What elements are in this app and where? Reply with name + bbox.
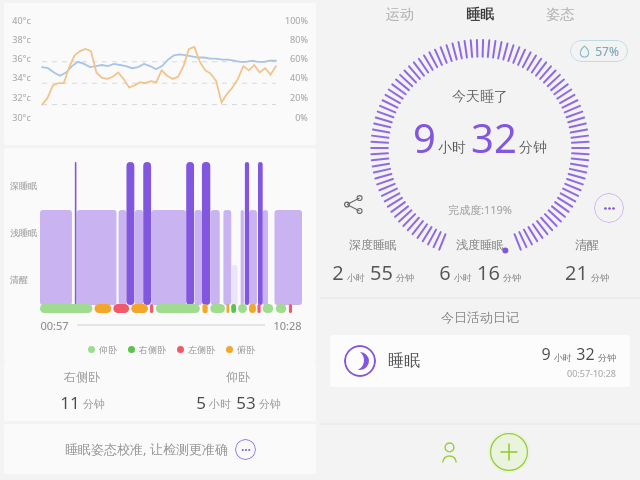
staticText: 小时: [454, 272, 472, 283]
button[interactable]: 姿态: [540, 2, 580, 28]
staticText: 小时: [209, 397, 231, 411]
staticText: 分钟: [83, 397, 105, 411]
button[interactable]: 运动: [380, 2, 420, 28]
staticText: 睡眠: [388, 351, 420, 371]
staticText: 左侧卧: [188, 344, 215, 355]
staticText: 30°c: [12, 111, 31, 123]
staticText: 分钟: [396, 272, 414, 283]
staticText: 2: [332, 259, 344, 286]
staticText: 清醒: [10, 274, 28, 285]
staticText: 分钟: [598, 352, 616, 363]
button[interactable]: 57%: [570, 40, 628, 62]
staticText: 21: [565, 259, 588, 286]
staticText: 浅度睡眠: [456, 237, 504, 252]
staticText: 完成度:119%: [448, 202, 512, 217]
staticText: 分钟: [519, 139, 547, 157]
staticText: 小时: [438, 139, 466, 157]
staticText: 分钟: [259, 397, 281, 411]
staticText: 32: [576, 343, 595, 365]
staticText: 11: [60, 391, 80, 414]
staticText: 00:57-10:28: [567, 367, 616, 379]
staticText: 40%: [290, 71, 308, 83]
staticText: 姿态: [546, 6, 574, 24]
other: More options: [235, 439, 256, 460]
button[interactable]: Add: [486, 429, 532, 475]
staticText: 右侧卧: [64, 369, 100, 384]
staticText: 32: [471, 110, 517, 164]
staticText: 俯卧: [237, 344, 255, 355]
staticText: 仰卧: [99, 344, 117, 355]
staticText: 34°c: [12, 71, 31, 83]
button[interactable]: Profile: [428, 431, 470, 473]
staticText: 38°c: [12, 33, 31, 45]
staticText: 深度睡眠: [349, 237, 397, 252]
staticText: 57%: [595, 43, 619, 59]
button[interactable]: 睡眠: [460, 2, 500, 28]
staticText: 80%: [290, 33, 308, 45]
staticText: 40°c: [12, 14, 31, 26]
staticText: 6: [439, 259, 451, 286]
button[interactable]: 睡眠: [330, 335, 630, 387]
staticText: 55: [370, 259, 393, 286]
staticText: 分钟: [591, 272, 609, 283]
staticText: 0%: [295, 111, 308, 123]
staticText: 深睡眠: [10, 180, 37, 191]
staticText: 53: [236, 391, 256, 414]
button[interactable]: 睡眠姿态校准, 让检测更准确: [4, 424, 316, 474]
staticText: 睡眠: [466, 6, 494, 24]
staticText: 清醒: [575, 237, 599, 252]
staticText: 右侧卧: [139, 344, 166, 355]
button[interactable]: More: [594, 193, 624, 223]
staticText: 9: [541, 343, 551, 365]
staticText: 仰卧: [226, 369, 250, 384]
staticText: 16: [477, 259, 500, 286]
staticText: 00:57: [40, 318, 69, 333]
staticText: 今天睡了: [452, 88, 508, 106]
staticText: 运动: [386, 6, 414, 24]
staticText: 分钟: [503, 272, 521, 283]
staticText: 20%: [290, 91, 308, 103]
staticText: 32°c: [12, 91, 31, 103]
staticText: 今日活动日记: [441, 309, 519, 325]
staticText: 10:28: [273, 318, 302, 333]
staticText: 100%: [285, 14, 308, 26]
staticText: 9: [413, 110, 436, 164]
staticText: 小时: [554, 352, 572, 363]
button[interactable]: Share: [338, 189, 368, 219]
staticText: 60%: [290, 52, 308, 64]
staticText: 浅睡眠: [10, 227, 37, 238]
staticText: 5: [196, 391, 206, 414]
staticText: 36°c: [12, 52, 31, 64]
staticText: 小时: [347, 272, 365, 283]
staticText: 睡眠姿态校准, 让检测更准确: [65, 440, 228, 458]
